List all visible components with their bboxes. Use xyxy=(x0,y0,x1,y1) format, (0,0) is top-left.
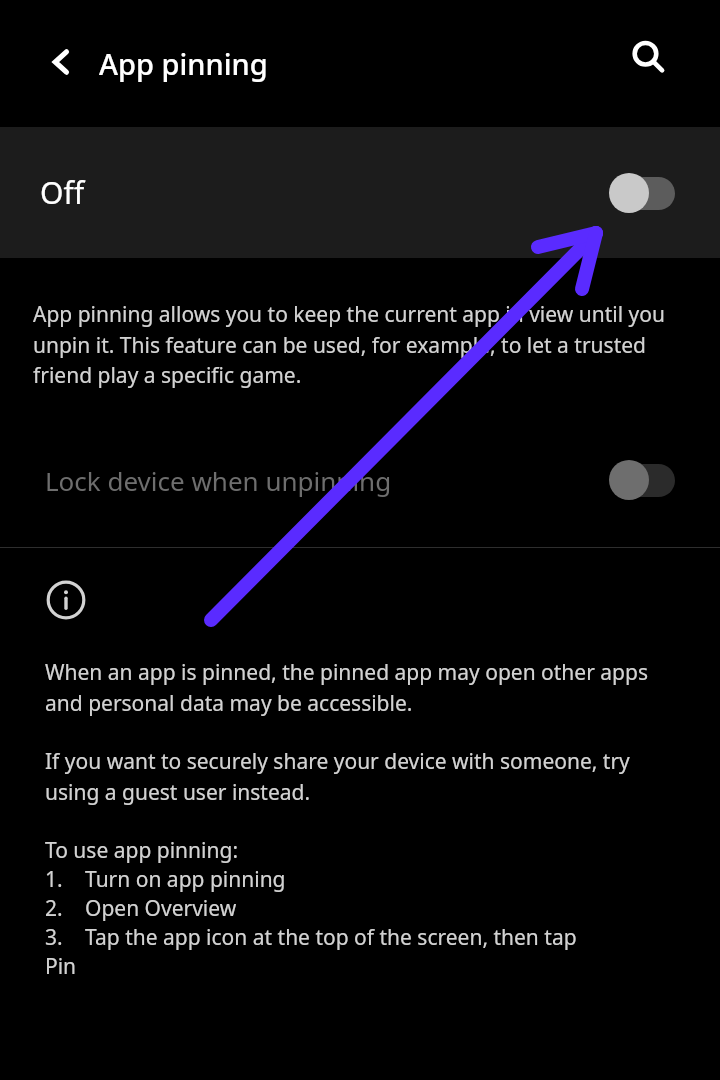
staticText: 1. xyxy=(45,865,63,894)
staticText: 2. xyxy=(45,894,63,923)
button[interactable]: Search xyxy=(617,26,679,88)
staticText: App pinning xyxy=(99,44,268,83)
staticText: When an app is pinned, the pinned app ma… xyxy=(45,658,684,717)
staticText: Pin xyxy=(45,952,77,981)
button[interactable]: Lock device when unpinning xyxy=(0,437,720,523)
button[interactable]: Toggle xyxy=(609,460,675,500)
staticText: Off xyxy=(40,172,85,213)
staticText: App pinning allows you to keep the curre… xyxy=(33,300,680,389)
staticText: Turn on app pinning xyxy=(85,865,286,894)
staticText: 3. xyxy=(45,923,63,952)
staticText: If you want to securely share your devic… xyxy=(45,747,684,806)
staticText: Lock device when unpinning xyxy=(45,463,392,498)
staticText: Open Overview xyxy=(85,894,237,923)
staticText: Tap the app icon at the top of the scree… xyxy=(85,923,577,952)
staticText: To use app pinning: xyxy=(45,836,239,865)
button[interactable]: Back xyxy=(31,32,91,92)
button[interactable]: Toggle xyxy=(609,173,675,213)
button[interactable]: Off xyxy=(0,127,720,258)
